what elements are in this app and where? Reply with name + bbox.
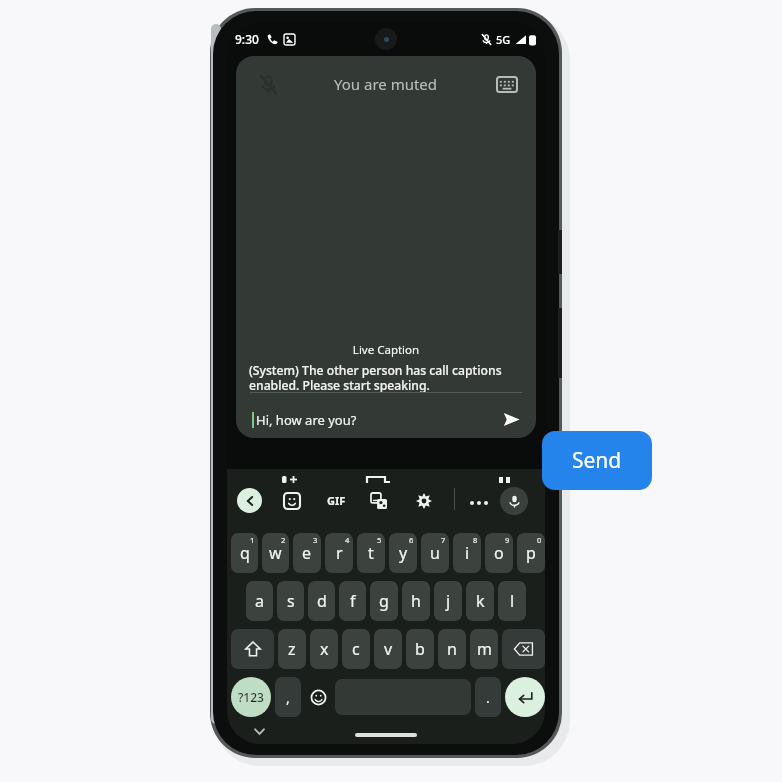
button[interactable]: Keyboard: [490, 67, 524, 101]
button[interactable]: Hide keyboard: [249, 721, 269, 741]
staticText: 9:30: [235, 31, 259, 47]
button[interactable]: .: [475, 677, 501, 717]
staticText: d: [317, 590, 327, 612]
button[interactable]: k: [466, 581, 494, 621]
button[interactable]: Emoji: [305, 677, 331, 717]
staticText: w: [269, 542, 282, 564]
staticText: x: [320, 638, 329, 660]
button[interactable]: c: [342, 629, 370, 669]
staticText: b: [415, 638, 425, 660]
button[interactable]: w: [262, 533, 289, 573]
button[interactable]: Back: [237, 488, 262, 513]
button[interactable]: v: [374, 629, 402, 669]
staticText: y: [399, 542, 408, 564]
button[interactable]: Send: [542, 431, 652, 490]
staticText: r: [336, 542, 343, 564]
button[interactable]: ,: [275, 677, 301, 717]
button[interactable]: p: [517, 533, 545, 573]
staticText: 3: [313, 535, 318, 545]
button[interactable]: r: [325, 533, 353, 573]
button[interactable]: Settings: [411, 488, 437, 514]
button[interactable]: e: [293, 533, 321, 573]
button[interactable]: ?123: [231, 677, 271, 717]
button[interactable]: j: [434, 581, 462, 621]
button[interactable]: q: [231, 533, 258, 573]
staticText: e: [302, 542, 312, 564]
button[interactable]: Stickers: [279, 488, 305, 514]
staticText: t: [368, 542, 374, 564]
button[interactable]: More options: [465, 489, 493, 517]
button[interactable]: f: [339, 581, 366, 621]
staticText: o: [494, 542, 504, 564]
button[interactable]: Send: [492, 401, 530, 438]
button[interactable]: Backspace: [502, 629, 545, 669]
staticText: (System) The other person has call capti…: [249, 362, 523, 393]
staticText: 0: [537, 535, 542, 545]
staticText: GIF: [327, 493, 346, 508]
staticText: c: [352, 638, 360, 660]
staticText: f: [350, 590, 356, 612]
button[interactable]: g: [370, 581, 398, 621]
staticText: a: [255, 590, 264, 612]
button[interactable]: l: [498, 581, 526, 621]
staticText: 1: [250, 535, 255, 545]
staticText: g: [379, 590, 389, 612]
staticText: 7: [441, 535, 446, 545]
staticText: n: [447, 638, 457, 660]
button[interactable]: Hi, how are you?: [236, 401, 536, 438]
staticText: Send: [572, 446, 622, 475]
staticText: .: [486, 688, 490, 707]
button[interactable]: a: [246, 581, 273, 621]
button[interactable]: d: [308, 581, 335, 621]
button[interactable]: n: [438, 629, 466, 669]
button[interactable]: Voice input: [500, 487, 528, 515]
button[interactable]: m: [470, 629, 498, 669]
staticText: 5: [377, 535, 382, 545]
staticText: z: [288, 638, 296, 660]
button[interactable]: h: [402, 581, 430, 621]
staticText: Live Caption: [249, 342, 523, 358]
button[interactable]: b: [406, 629, 434, 669]
staticText: 9: [505, 535, 510, 545]
button[interactable]: z: [278, 629, 306, 669]
staticText: m: [477, 638, 492, 660]
staticText: ?123: [238, 689, 264, 705]
staticText: v: [384, 638, 393, 660]
staticText: h: [411, 590, 421, 612]
button[interactable]: x: [310, 629, 338, 669]
staticText: 2: [281, 535, 286, 545]
staticText: l: [510, 590, 515, 612]
button[interactable]: t: [357, 533, 385, 573]
staticText: 6: [409, 535, 414, 545]
staticText: k: [476, 590, 485, 612]
staticText: p: [526, 542, 536, 564]
staticText: You are muted: [334, 74, 438, 94]
button[interactable]: y: [389, 533, 417, 573]
staticText: 4: [345, 535, 350, 545]
staticText: Hi, how are you?: [256, 411, 357, 429]
staticText: q: [240, 542, 250, 564]
staticText: s: [287, 590, 295, 612]
staticText: 5G: [496, 32, 511, 47]
staticText: ,: [286, 688, 290, 707]
button[interactable]: u: [421, 533, 449, 573]
button[interactable]: Shift: [231, 629, 274, 669]
button[interactable]: GIF: [321, 489, 351, 511]
button[interactable]: s: [277, 581, 304, 621]
button[interactable]: Translate: [366, 488, 392, 514]
button[interactable]: Enter: [505, 677, 545, 717]
button[interactable]: i: [453, 533, 481, 573]
staticText: 8: [473, 535, 478, 545]
staticText: u: [430, 542, 440, 564]
button[interactable]: o: [485, 533, 513, 573]
staticText: i: [465, 542, 470, 564]
staticText: j: [446, 590, 451, 612]
